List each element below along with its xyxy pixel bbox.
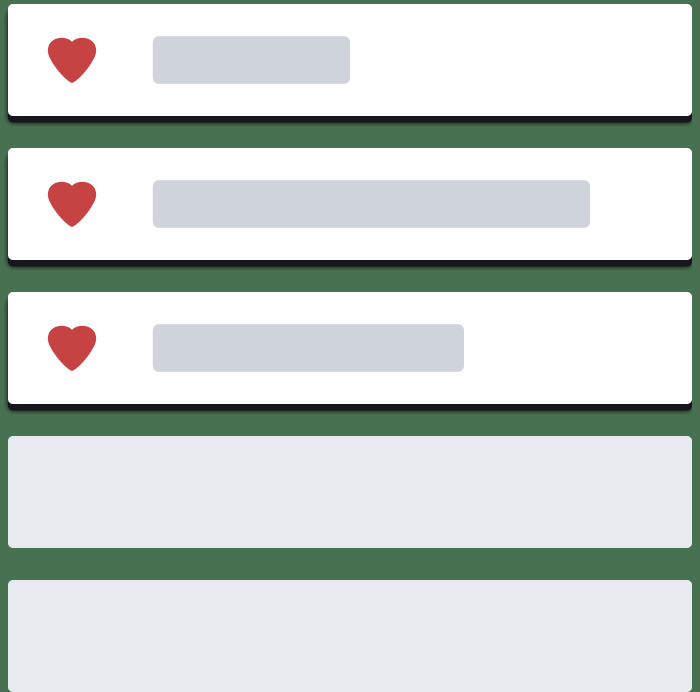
button[interactable]: Favourite item, loading <box>8 292 692 404</box>
button[interactable]: Favourite item, loading <box>8 4 692 116</box>
button[interactable]: Favourite item, loading <box>8 148 692 260</box>
